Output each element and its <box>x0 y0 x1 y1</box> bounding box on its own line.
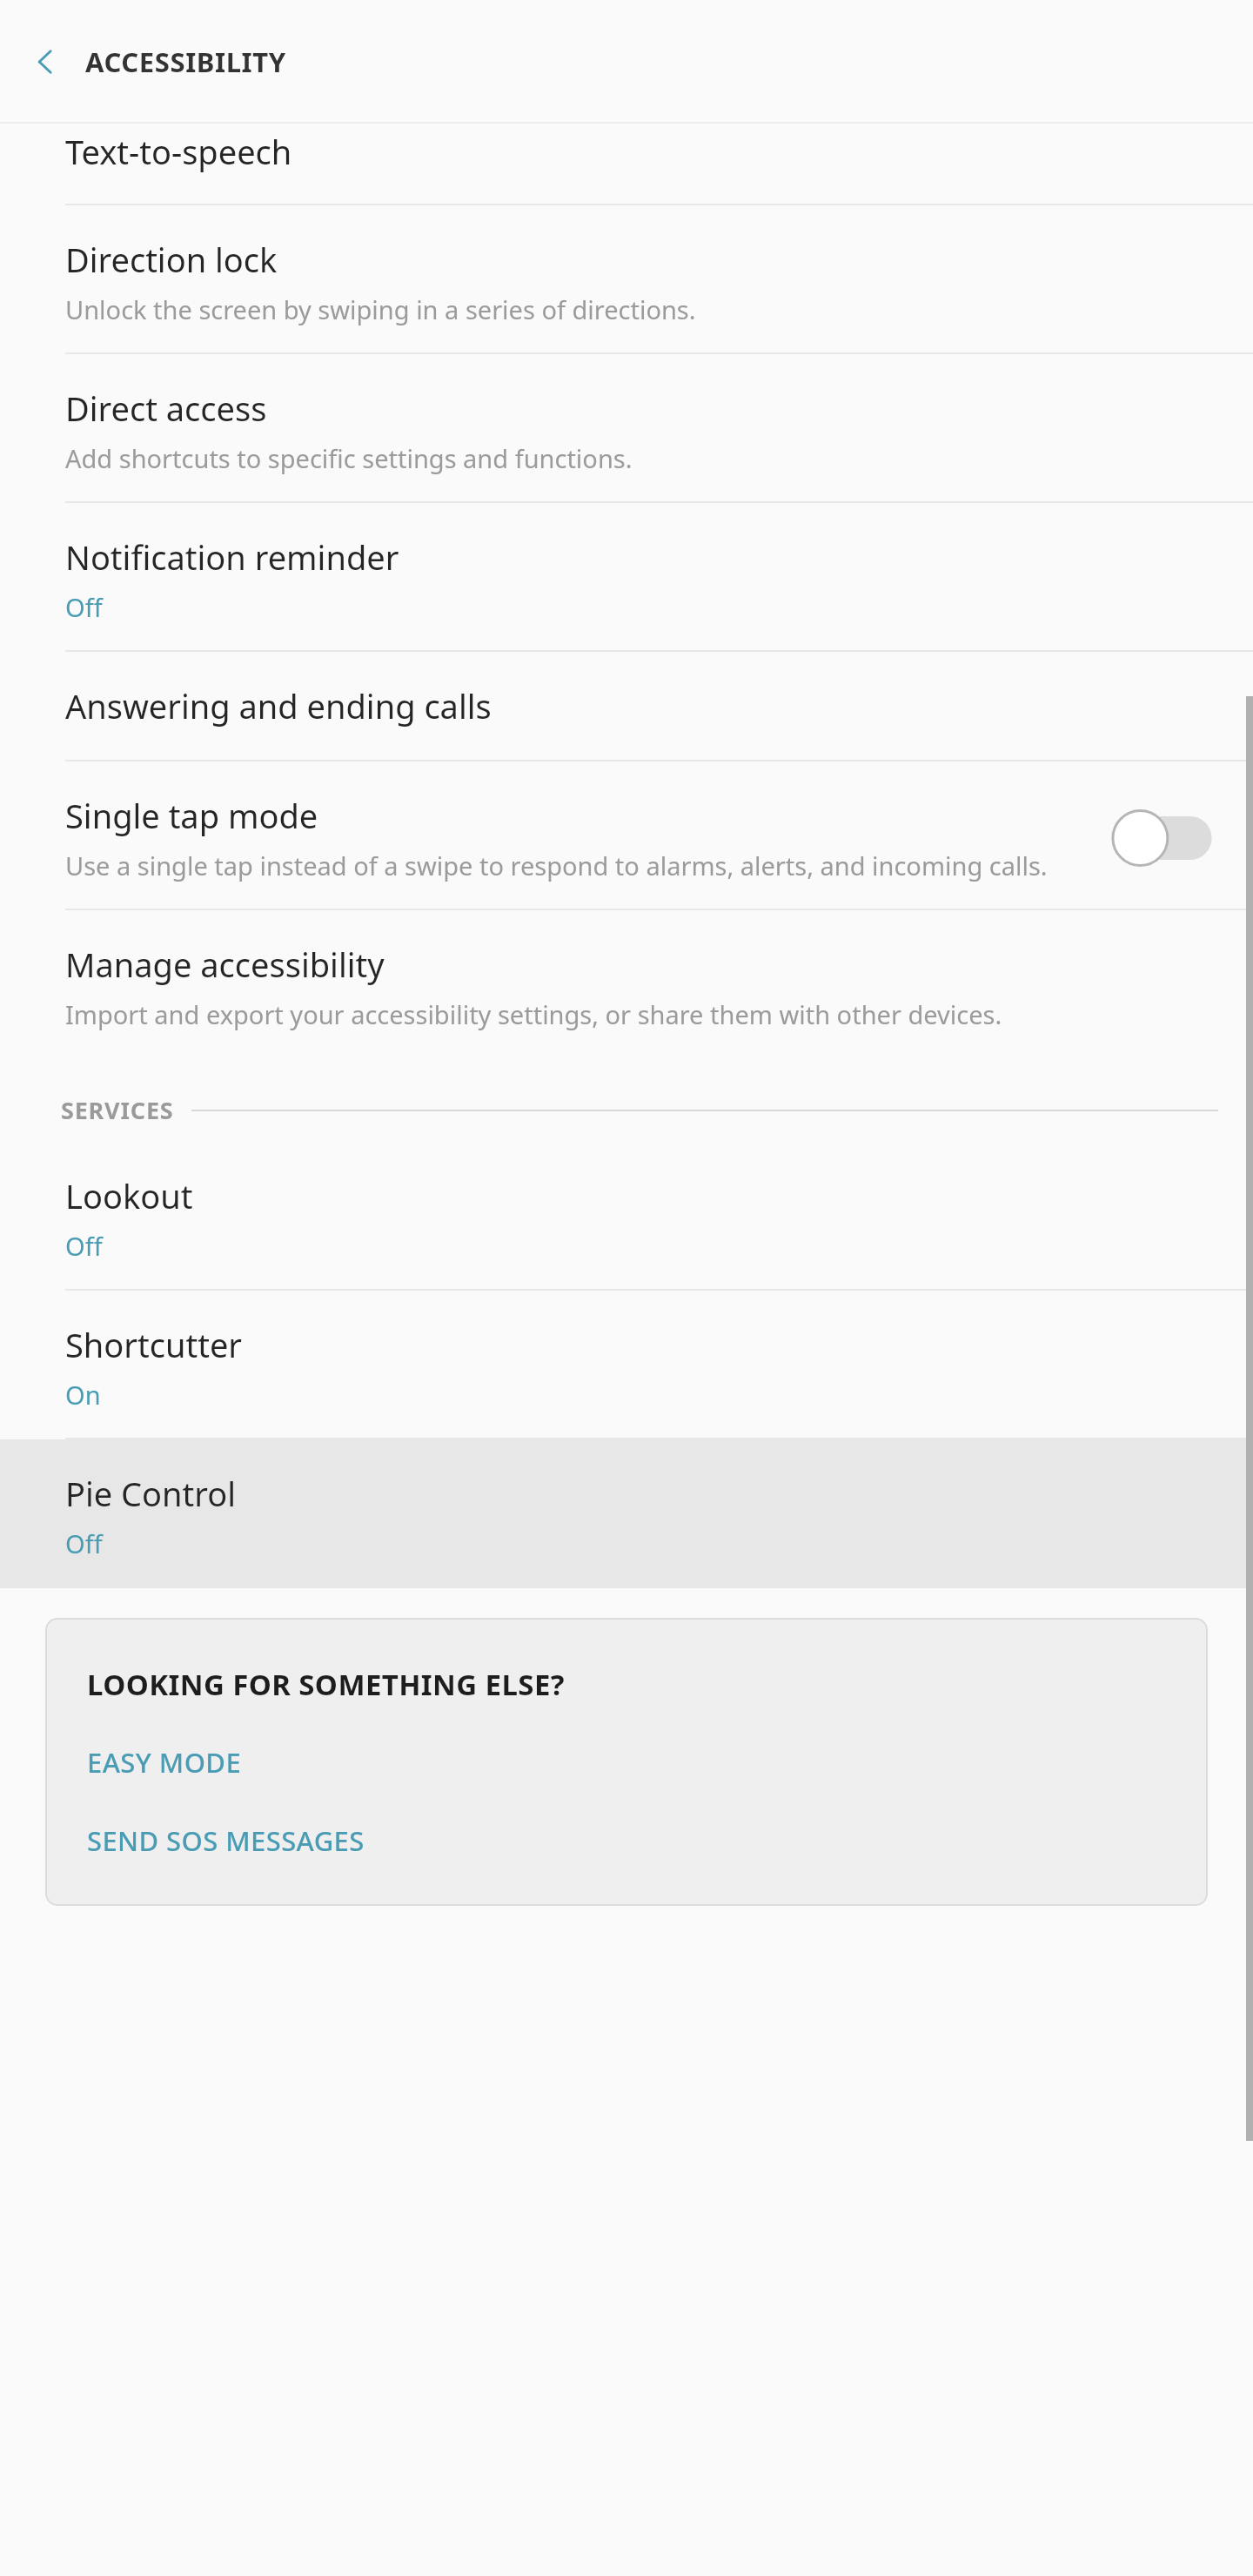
staticText: Direct access <box>65 386 267 431</box>
staticText: Lookout <box>65 1173 193 1218</box>
staticText: Single tap mode <box>65 793 318 838</box>
staticText: Text-to-speech <box>65 129 292 174</box>
button[interactable]: EASY MODE <box>87 1744 1173 1781</box>
button[interactable]: Shortcutter <box>0 1291 1253 1438</box>
button[interactable]: Lookout <box>0 1149 1253 1289</box>
staticText: Shortcutter <box>65 1322 243 1367</box>
button[interactable]: Notification reminder <box>0 503 1253 650</box>
staticText: LOOKING FOR SOMETHING ELSE? <box>87 1665 565 1704</box>
button[interactable]: Back <box>17 34 73 90</box>
button[interactable]: Text-to-speech <box>0 124 1253 204</box>
staticText: Off <box>65 590 103 624</box>
button[interactable]: Single tap mode toggle <box>1105 798 1218 878</box>
button[interactable]: Pie Control <box>0 1439 1253 1588</box>
button[interactable]: Single tap mode <box>0 761 1253 909</box>
staticText: Import and export your accessibility set… <box>65 997 1002 1031</box>
button[interactable]: Direction lock <box>0 205 1253 352</box>
staticText: Pie Control <box>65 1471 237 1516</box>
staticText: Unlock the screen by swiping in a series… <box>65 292 696 326</box>
staticText: Add shortcuts to specific settings and f… <box>65 441 633 475</box>
staticText: SERVICES <box>61 1094 174 1126</box>
staticText: ACCESSIBILITY <box>85 44 286 80</box>
staticText: EASY MODE <box>87 1744 242 1781</box>
staticText: Off <box>65 1526 103 1560</box>
staticText: Notification reminder <box>65 534 399 580</box>
staticText: Use a single tap instead of a swipe to r… <box>65 849 1048 882</box>
button[interactable]: Answering and ending calls <box>0 652 1253 760</box>
button[interactable]: Direct access <box>0 354 1253 501</box>
button[interactable]: SEND SOS MESSAGES <box>87 1822 1173 1859</box>
staticText: Direction lock <box>65 237 278 282</box>
staticText: SEND SOS MESSAGES <box>87 1822 365 1859</box>
staticText: Manage accessibility <box>65 942 385 987</box>
staticText: Off <box>65 1229 103 1263</box>
staticText: Answering and ending calls <box>65 683 492 728</box>
staticText: On <box>65 1378 101 1412</box>
button[interactable]: Manage accessibility <box>0 910 1253 1059</box>
